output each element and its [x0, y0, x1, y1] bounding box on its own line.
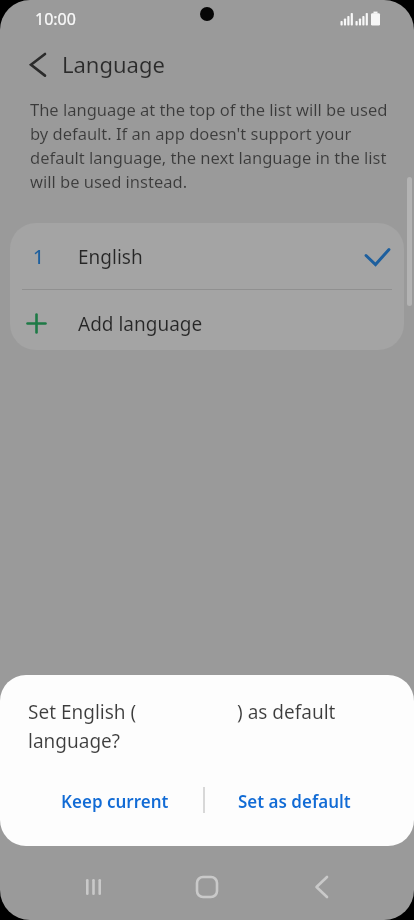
staticText: Set as default — [238, 790, 351, 813]
button[interactable] — [187, 867, 227, 907]
staticText: The language at the top of the list will… — [30, 98, 388, 193]
button[interactable]: Set as default — [218, 780, 370, 822]
staticText: language? — [28, 728, 121, 754]
staticText: Keep current — [61, 790, 169, 813]
button[interactable]: 1 — [10, 223, 404, 289]
staticText: ) as default — [237, 699, 336, 725]
staticText: Add language — [78, 311, 203, 337]
button[interactable]: Keep current — [40, 780, 190, 822]
button[interactable] — [14, 44, 62, 86]
staticText: Language — [62, 49, 165, 79]
button[interactable]: Add language — [10, 290, 404, 350]
staticText: Set English ( — [28, 699, 137, 725]
staticText: English — [78, 244, 143, 270]
button[interactable] — [73, 867, 113, 907]
staticText: 1 — [33, 244, 44, 270]
button[interactable] — [302, 867, 342, 907]
staticText: 10:00 — [35, 8, 76, 30]
